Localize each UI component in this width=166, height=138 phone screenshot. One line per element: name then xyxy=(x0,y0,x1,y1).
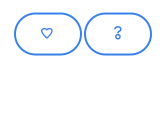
button[interactable]: Favorite xyxy=(15,13,81,54)
button[interactable]: Help xyxy=(85,13,151,54)
